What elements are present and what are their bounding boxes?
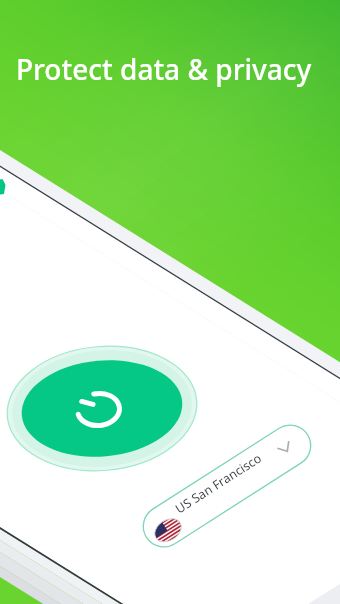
staticText: Protect data & privacy [16,50,312,88]
staticText: US San Francisco [172,449,265,517]
button[interactable]: US San Francisco [172,449,265,517]
